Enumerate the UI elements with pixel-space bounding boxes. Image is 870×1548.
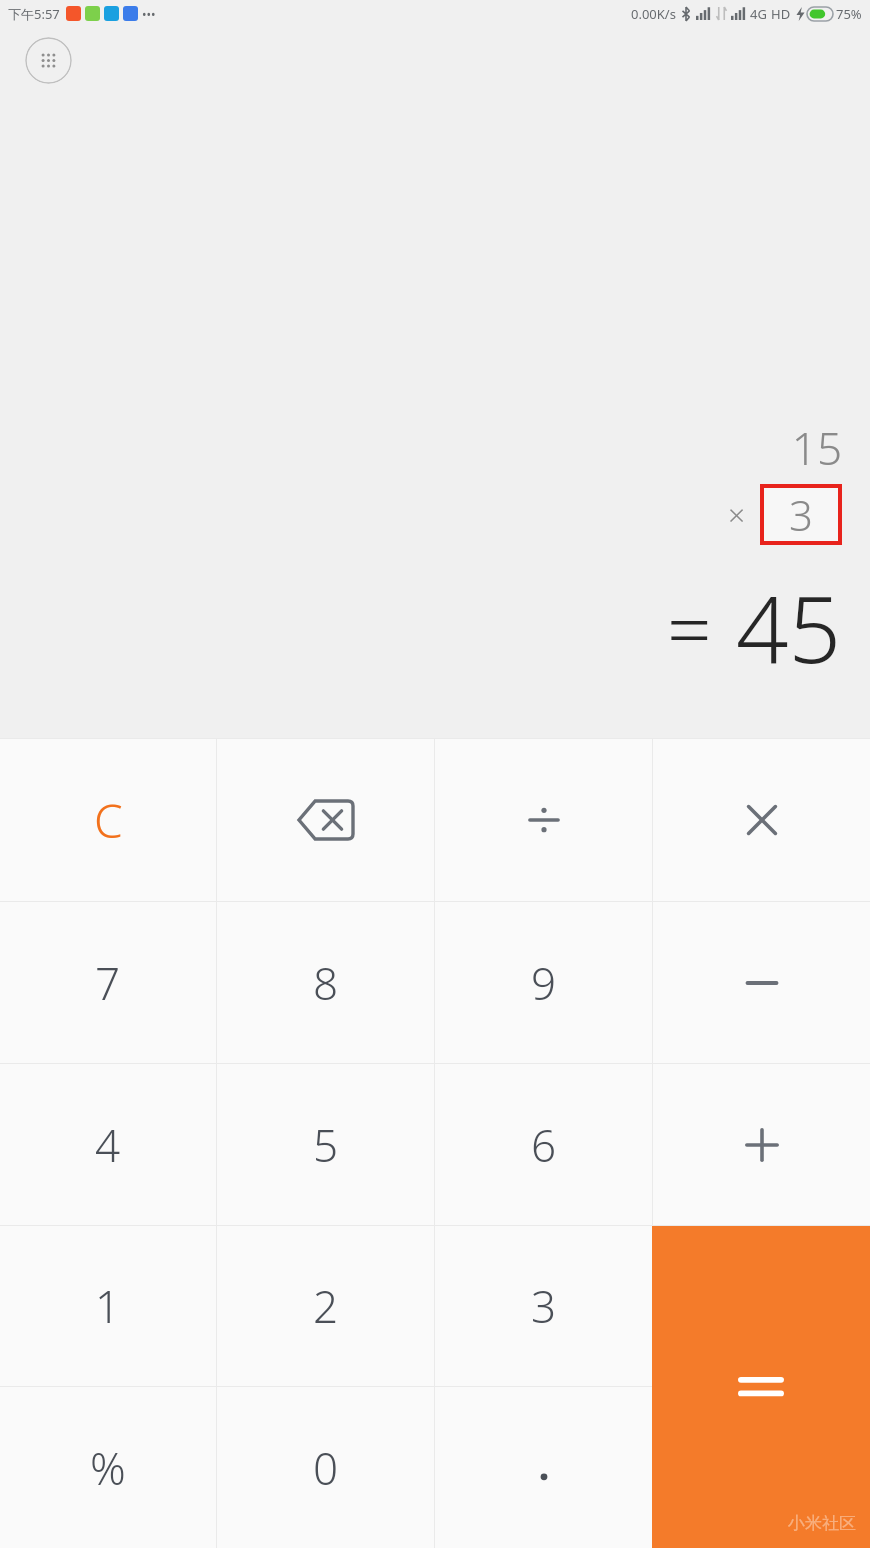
button[interactable]: Equals bbox=[652, 1226, 870, 1548]
staticText: 1 bbox=[95, 1276, 121, 1336]
button[interactable]: 0 bbox=[217, 1387, 434, 1548]
staticText: 9 bbox=[531, 953, 557, 1013]
staticText: × bbox=[728, 494, 746, 535]
other: Backspace bbox=[299, 801, 353, 839]
staticText: 下午5:57 bbox=[8, 5, 60, 23]
staticText: ••• bbox=[142, 6, 156, 22]
button[interactable]: 2 bbox=[217, 1226, 434, 1386]
button[interactable]: 4 bbox=[0, 1064, 216, 1225]
button[interactable]: 9 bbox=[435, 902, 652, 1063]
staticText: = bbox=[667, 575, 712, 681]
button[interactable]: 1 bbox=[0, 1226, 216, 1386]
button[interactable]: Backspace bbox=[217, 739, 434, 901]
staticText: 75% bbox=[836, 5, 862, 23]
other: Minus bbox=[740, 961, 784, 1005]
button[interactable]: Divide bbox=[435, 739, 652, 901]
button[interactable]: Menu bbox=[25, 37, 72, 84]
other: Multiply bbox=[741, 799, 783, 841]
button[interactable]: Plus bbox=[653, 1064, 870, 1225]
other: Divide bbox=[522, 798, 566, 842]
button[interactable]: % bbox=[0, 1387, 216, 1548]
staticText: 15 bbox=[791, 418, 842, 478]
staticText: C bbox=[94, 789, 123, 852]
staticText: 3 bbox=[531, 1276, 557, 1336]
staticText: 8 bbox=[313, 953, 339, 1013]
button[interactable]: 6 bbox=[435, 1064, 652, 1225]
button[interactable]: 8 bbox=[217, 902, 434, 1063]
other: Decimal point bbox=[529, 1446, 559, 1490]
staticText: 45 bbox=[736, 565, 842, 690]
staticText: 小米社区 bbox=[788, 1513, 856, 1534]
staticText: 2 bbox=[313, 1276, 339, 1336]
button[interactable]: Minus bbox=[653, 902, 870, 1063]
other: Plus bbox=[739, 1122, 785, 1168]
staticText: 4 bbox=[95, 1115, 121, 1175]
button[interactable]: 3 bbox=[435, 1226, 652, 1386]
staticText: 0 bbox=[313, 1438, 339, 1498]
staticText: 6 bbox=[531, 1115, 557, 1175]
staticText: 5 bbox=[313, 1115, 339, 1175]
staticText: % bbox=[90, 1438, 126, 1498]
staticText: 4G bbox=[750, 5, 767, 23]
staticText: 0.00K/s bbox=[631, 5, 676, 23]
staticText: HD bbox=[771, 5, 791, 23]
button[interactable]: 5 bbox=[217, 1064, 434, 1225]
button[interactable]: Multiply bbox=[653, 739, 870, 901]
button[interactable]: Clear bbox=[0, 739, 216, 901]
other: Clear bbox=[94, 789, 123, 852]
button[interactable]: 7 bbox=[0, 902, 216, 1063]
staticText: 3 bbox=[789, 486, 813, 543]
staticText: 7 bbox=[95, 953, 121, 1013]
button[interactable]: Decimal point bbox=[435, 1387, 652, 1548]
